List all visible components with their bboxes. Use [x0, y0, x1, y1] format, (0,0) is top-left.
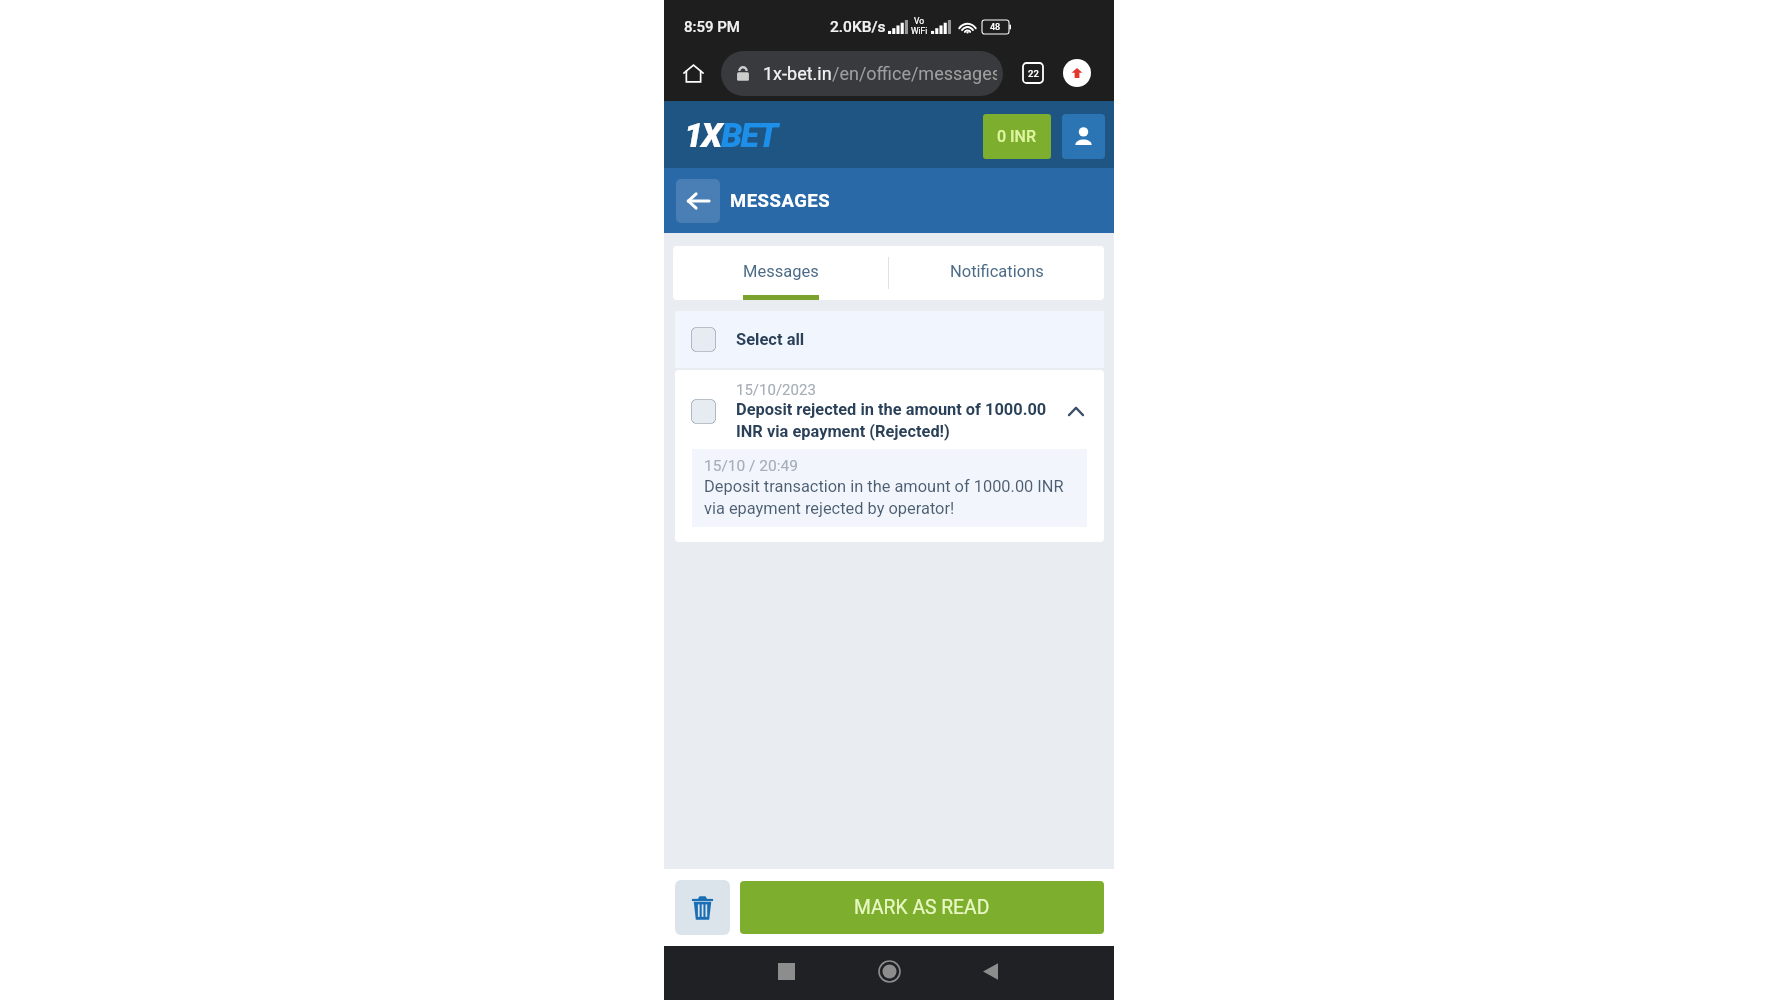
staticText: 0 INR	[997, 127, 1037, 146]
staticText: WiFi	[911, 26, 928, 36]
button[interactable]: Account	[1062, 114, 1105, 159]
button[interactable]: Home	[676, 56, 710, 90]
staticText: 2.0KB/s	[830, 18, 886, 36]
button[interactable]: 1xBet home	[684, 115, 777, 155]
button[interactable]: Select all	[675, 311, 1104, 368]
staticText: /en/office/messages	[832, 63, 997, 84]
staticText: 1x-bet.in	[763, 63, 832, 84]
button[interactable]: Update available	[1063, 59, 1091, 87]
button[interactable]: Back	[969, 950, 1012, 993]
staticText: MARK AS READ	[854, 896, 990, 919]
staticText: 15/10 / 20:49	[704, 457, 798, 475]
button[interactable]: 0 INR	[983, 114, 1051, 159]
button[interactable]: Recent apps	[765, 950, 808, 993]
button[interactable]: 15/10/2023	[675, 370, 1104, 449]
staticText: MESSAGES	[730, 190, 831, 212]
staticText: 1X	[684, 115, 721, 155]
button[interactable]: 1x-bet.in	[721, 51, 1003, 96]
button[interactable]: Tabs	[1021, 59, 1045, 87]
staticText: 15/10/2023	[736, 381, 816, 399]
staticText: Deposit rejected in the amount of 1000.0…	[736, 400, 1058, 441]
staticText: Notifications	[950, 262, 1044, 281]
button[interactable]: MARK AS READ	[740, 881, 1104, 934]
staticText: Select all	[736, 330, 805, 349]
staticText: Vo	[914, 16, 925, 26]
button[interactable]: Home	[868, 950, 911, 993]
staticText: Deposit transaction in the amount of 100…	[704, 477, 1066, 518]
button[interactable]: Messages	[673, 246, 888, 300]
button[interactable]: Delete	[675, 880, 730, 935]
staticText: 22	[1028, 68, 1039, 79]
staticText: 48	[990, 22, 1001, 33]
button[interactable]: Back	[676, 179, 720, 223]
staticText: Messages	[743, 262, 819, 281]
button[interactable]: Notifications	[889, 246, 1104, 300]
staticText: 8:59 PM	[684, 18, 740, 36]
staticText: BET	[721, 115, 777, 155]
